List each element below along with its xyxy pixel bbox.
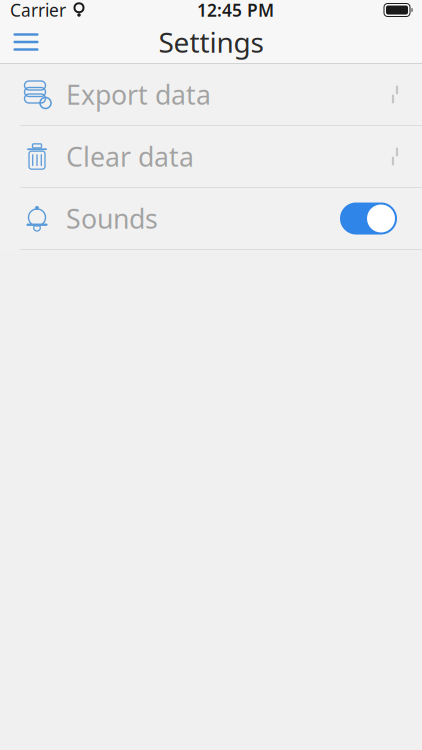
button[interactable]: Sounds, on xyxy=(340,202,397,234)
button[interactable]: Clear data xyxy=(0,126,422,187)
staticText: 12:45 PM xyxy=(197,0,274,21)
button[interactable]: Export data xyxy=(0,64,422,125)
button[interactable]: Menu xyxy=(2,20,50,64)
staticText: Settings xyxy=(158,23,263,61)
staticText: Carrier xyxy=(10,0,66,21)
staticText: Clear data xyxy=(66,139,194,174)
staticText: Export data xyxy=(66,77,211,112)
staticText: Sounds xyxy=(66,201,158,236)
